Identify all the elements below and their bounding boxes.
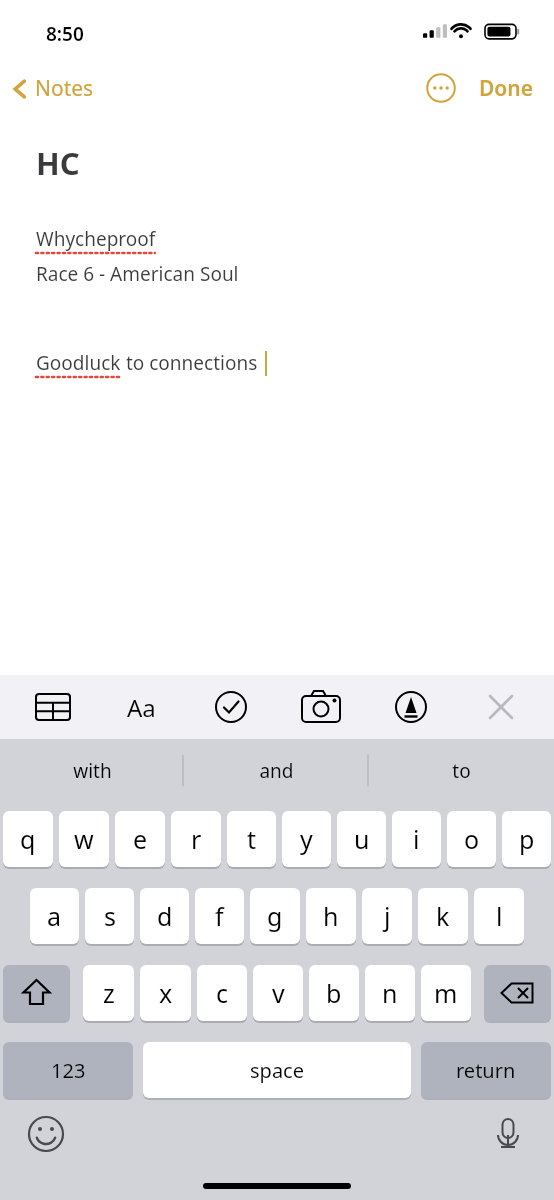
staticText: a [47, 899, 62, 933]
staticText: s [104, 899, 116, 933]
button[interactable]: Camera [276, 675, 366, 739]
button[interactable]: t [227, 811, 276, 867]
button[interactable]: space [143, 1042, 411, 1098]
staticText: f [215, 899, 224, 933]
button[interactable]: return [421, 1042, 551, 1098]
staticText: 8:50 [46, 21, 84, 47]
staticText: v [272, 976, 285, 1010]
button[interactable]: 123 [3, 1042, 133, 1098]
staticText: z [103, 976, 115, 1010]
staticText: l [496, 899, 503, 933]
button[interactable]: i [392, 811, 441, 867]
staticText: Done [479, 74, 534, 103]
button[interactable]: n [365, 965, 415, 1021]
staticText: y [300, 822, 313, 856]
staticText: i [413, 822, 420, 856]
button[interactable]: s [85, 888, 134, 944]
button[interactable]: f [195, 888, 244, 944]
button[interactable]: Shift [3, 965, 70, 1021]
button[interactable]: and [184, 739, 369, 802]
button[interactable]: Markup [366, 675, 456, 739]
staticText: w [74, 822, 94, 856]
button[interactable]: with [0, 739, 184, 802]
button[interactable]: g [250, 888, 300, 944]
staticText: to [452, 758, 471, 784]
staticText: c [216, 976, 229, 1010]
button[interactable]: Backspace [484, 965, 551, 1021]
button[interactable]: Insert table [8, 675, 97, 739]
button[interactable]: j [362, 888, 412, 944]
staticText: Whycheproof [36, 226, 156, 252]
button[interactable]: c [197, 965, 247, 1021]
button[interactable]: o [447, 811, 496, 867]
staticText: b [326, 976, 342, 1010]
button[interactable]: Notes [0, 70, 104, 107]
staticText: o [464, 822, 480, 856]
button[interactable]: Checklist [186, 675, 276, 739]
button[interactable]: w [59, 811, 109, 867]
button[interactable]: q [3, 811, 53, 867]
button[interactable]: r [171, 811, 221, 867]
staticText: j [384, 899, 391, 933]
button[interactable]: a [30, 888, 79, 944]
staticText: and [259, 758, 294, 784]
staticText: HC [36, 142, 80, 184]
staticText: to connections [121, 350, 258, 376]
staticText: m [434, 976, 458, 1010]
staticText: r [191, 822, 202, 856]
button[interactable]: k [418, 888, 468, 944]
staticText: p [519, 822, 535, 856]
staticText: Goodluck [36, 350, 121, 376]
staticText: return [456, 1057, 516, 1084]
button[interactable]: d [140, 888, 189, 944]
staticText: Race 6 - American Soul [36, 261, 239, 287]
button[interactable]: Emoji [20, 1108, 72, 1160]
staticText: space [250, 1057, 304, 1084]
button[interactable]: Dictation [482, 1108, 534, 1160]
button[interactable]: b [309, 965, 359, 1021]
button[interactable]: Dismiss keyboard [456, 675, 546, 739]
button[interactable]: Aa [97, 675, 186, 739]
button[interactable]: x [140, 965, 191, 1021]
staticText: with [73, 758, 112, 784]
staticText: g [267, 899, 283, 933]
button[interactable]: m [421, 965, 471, 1021]
button[interactable]: z [83, 965, 134, 1021]
button[interactable]: l [474, 888, 524, 944]
staticText: Notes [35, 74, 94, 103]
staticText: 123 [51, 1057, 86, 1084]
staticText: t [247, 822, 257, 856]
staticText: d [157, 899, 173, 933]
button[interactable]: More options [419, 66, 463, 110]
staticText: n [382, 976, 398, 1010]
button[interactable]: h [306, 888, 356, 944]
button[interactable]: u [337, 811, 386, 867]
staticText: e [133, 822, 148, 856]
button[interactable]: e [115, 811, 165, 867]
staticText: k [436, 899, 450, 933]
staticText: Aa [127, 691, 156, 724]
staticText: q [20, 822, 36, 856]
staticText: u [354, 822, 370, 856]
staticText: h [323, 899, 339, 933]
button[interactable]: v [253, 965, 303, 1021]
button[interactable]: p [502, 811, 551, 867]
button[interactable]: to [369, 739, 554, 802]
staticText: x [159, 976, 173, 1010]
button[interactable]: Done [473, 68, 540, 109]
button[interactable]: y [282, 811, 331, 867]
